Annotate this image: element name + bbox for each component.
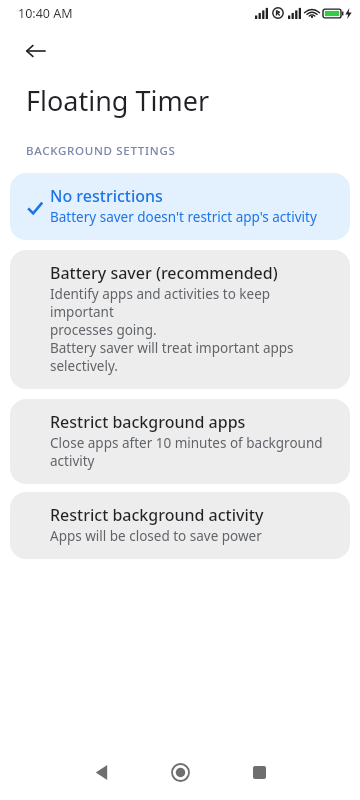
staticText: Identify apps and activities to keep imp… — [50, 285, 336, 375]
button[interactable]: Battery saver (recommended) — [10, 250, 350, 389]
staticText: Close apps after 10 minutes of backgroun… — [50, 434, 323, 470]
button[interactable]: Back — [14, 30, 58, 72]
staticText: Restrict background activity — [50, 504, 264, 526]
staticText: No restrictions — [50, 185, 163, 207]
staticText: BACKGROUND SETTINGS — [26, 143, 176, 159]
button[interactable]: Home — [157, 749, 203, 795]
button[interactable]: Back — [78, 749, 124, 795]
staticText: 10:40 AM — [18, 5, 73, 22]
staticText: Floating Timer — [26, 82, 210, 119]
staticText: Restrict background apps — [50, 411, 246, 433]
staticText: Battery saver (recommended) — [50, 262, 278, 284]
button[interactable]: Recent apps — [236, 749, 282, 795]
button[interactable]: Restrict background apps — [10, 399, 350, 484]
staticText: Battery saver doesn't restrict app's act… — [50, 208, 317, 226]
button[interactable]: Restrict background activity — [10, 492, 350, 559]
button[interactable]: No restrictions — [10, 173, 350, 240]
staticText: Apps will be closed to save power — [50, 527, 262, 545]
